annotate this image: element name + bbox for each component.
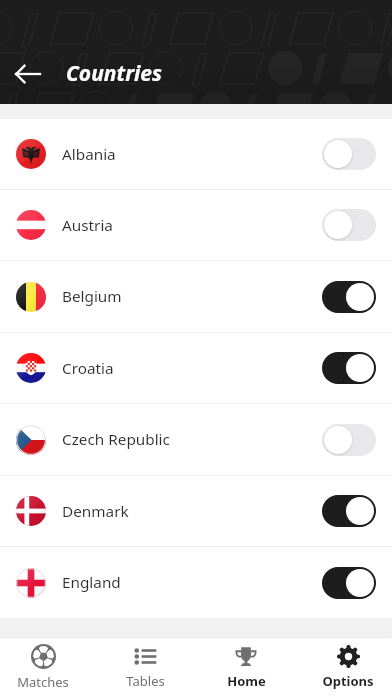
- button[interactable]: Austria: [0, 190, 392, 260]
- staticText: Matches: [17, 673, 69, 691]
- button[interactable]: Disabled: [322, 424, 376, 456]
- staticText: Belgium: [62, 286, 122, 307]
- button[interactable]: Enabled: [322, 281, 376, 313]
- button[interactable]: Croatia: [0, 333, 392, 403]
- staticText: Czech Republic: [62, 429, 170, 450]
- button[interactable]: Belgium: [0, 261, 392, 332]
- button[interactable]: Disabled: [322, 138, 376, 170]
- staticText: Home: [227, 672, 266, 690]
- staticText: Tables: [126, 672, 165, 690]
- staticText: Denmark: [62, 501, 129, 522]
- staticText: Austria: [62, 215, 113, 236]
- button[interactable]: Albania: [0, 119, 392, 189]
- button[interactable]: England: [0, 547, 392, 618]
- button[interactable]: Tables: [102, 638, 188, 696]
- button[interactable]: Enabled: [322, 352, 376, 384]
- staticText: Croatia: [62, 358, 114, 379]
- staticText: Albania: [62, 144, 116, 165]
- staticText: Options: [322, 672, 374, 690]
- button[interactable]: Denmark: [0, 476, 392, 546]
- button[interactable]: Enabled: [322, 495, 376, 527]
- button[interactable]: Matches: [0, 638, 86, 696]
- button[interactable]: Enabled: [322, 567, 376, 599]
- staticText: England: [62, 572, 121, 593]
- button[interactable]: Disabled: [322, 209, 376, 241]
- button[interactable]: Czech Republic: [0, 404, 392, 475]
- button[interactable]: Home: [203, 638, 289, 696]
- button[interactable]: Options: [305, 638, 391, 696]
- staticText: Countries: [66, 59, 162, 88]
- button[interactable]: Back: [0, 46, 56, 102]
